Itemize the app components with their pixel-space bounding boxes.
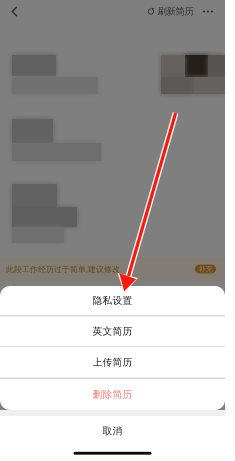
- staticText: 英文简历: [92, 325, 132, 337]
- staticText: 取消: [102, 425, 122, 437]
- button[interactable]: 取消: [0, 416, 225, 446]
- button[interactable]: 英文简历: [0, 316, 225, 346]
- button[interactable]: 隐私设置: [0, 285, 225, 315]
- button[interactable]: 上传简历: [0, 347, 225, 378]
- button[interactable]: 刷新简历: [147, 0, 193, 23]
- button[interactable]: Back: [0, 0, 27, 23]
- staticText: 此段工作经历过于简单,建议修改: [6, 264, 120, 274]
- staticText: 上传简历: [92, 356, 132, 368]
- staticText: 刷新简历: [157, 6, 193, 17]
- staticText: 补充: [198, 264, 212, 274]
- staticText: 删除简历: [92, 388, 132, 401]
- staticText: 隐私设置: [92, 294, 132, 307]
- button[interactable]: 删除简历: [0, 379, 225, 411]
- button[interactable]: More options: [197, 0, 219, 23]
